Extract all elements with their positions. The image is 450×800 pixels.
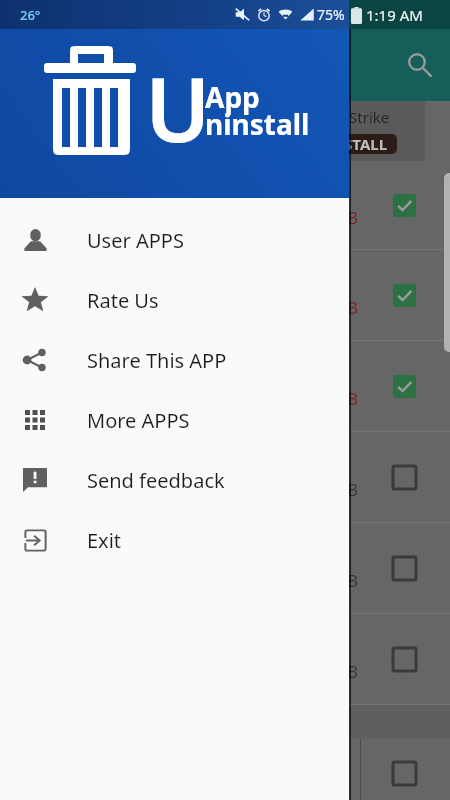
- staticText: 1:19 AM: [366, 5, 423, 25]
- staticText: 88.2 MB: [297, 297, 358, 319]
- other: Exit: [24, 529, 47, 552]
- button[interactable]: Temple Run 2: [0, 432, 450, 523]
- other: Rate Us: [22, 288, 48, 312]
- button[interactable]: Search: [398, 43, 442, 87]
- staticText: Counter Strike: [88, 181, 203, 204]
- staticText: 75%: [317, 5, 345, 24]
- button[interactable]: Share This APP: [0, 330, 349, 390]
- staticText: Counter Strike: [288, 107, 390, 127]
- button[interactable]: Exit: [0, 510, 349, 570]
- button[interactable]: INSTALL: [317, 134, 397, 154]
- staticText: U: [145, 48, 211, 168]
- staticText: INSTALL: [326, 134, 388, 154]
- staticText: 64.1 MB: [297, 570, 358, 592]
- button[interactable]: Rate Us: [0, 270, 349, 330]
- staticText: More APPS: [87, 407, 190, 434]
- staticText: Subway Surfers: [88, 362, 212, 385]
- staticText: Rate Us: [87, 287, 159, 314]
- staticText: User APPS: [87, 227, 184, 254]
- other: Send feedback: [23, 468, 47, 492]
- staticText: Share This APP: [87, 347, 227, 374]
- button[interactable]: Plants vs Zombie: [0, 614, 450, 705]
- staticText: 51.4 MB: [297, 388, 358, 410]
- staticText: Send feedback: [87, 467, 225, 494]
- other: More APPS: [25, 410, 45, 430]
- button[interactable]: Send feedback: [0, 450, 349, 510]
- staticText: 26°: [20, 6, 41, 24]
- button[interactable]: User APPS: [0, 210, 349, 270]
- staticText: Candy Crush: [88, 544, 190, 567]
- button[interactable]: Subway Surfers: [0, 341, 450, 432]
- button[interactable]: Candy Crush: [0, 523, 450, 614]
- staticText: 36.4 MB: [297, 207, 358, 229]
- staticText: 41.3 MB: [297, 661, 358, 683]
- staticText: Temple Run 2: [88, 453, 197, 476]
- other: User APPS: [24, 229, 47, 251]
- button[interactable]: Clash of Clans: [0, 250, 450, 341]
- button[interactable]: More APPS: [0, 390, 349, 450]
- button[interactable]: Counter Strike: [0, 161, 450, 250]
- staticText: 17.9 MB: [297, 479, 358, 501]
- staticText: Exit: [87, 527, 122, 554]
- staticText: App: [205, 78, 260, 116]
- other: Share This APP: [23, 349, 47, 371]
- staticText: ninstall: [205, 105, 310, 143]
